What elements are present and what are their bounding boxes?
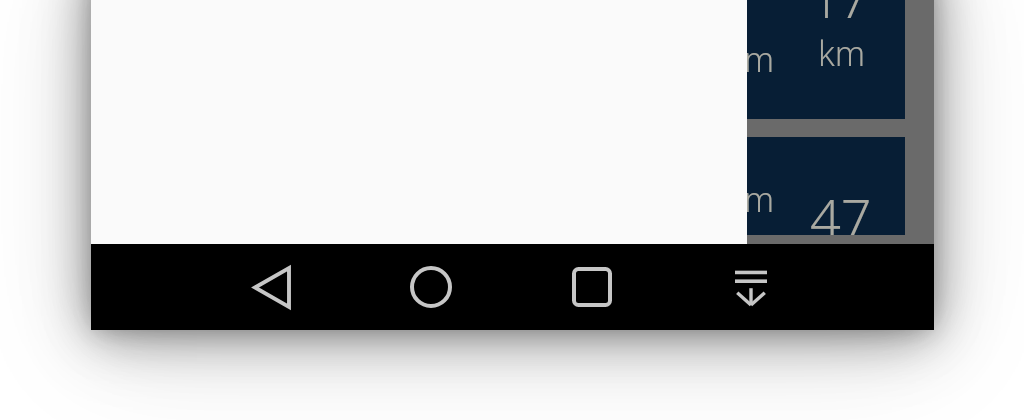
staticText: km [727, 36, 775, 82]
button[interactable]: 17 [109, 0, 905, 119]
button[interactable]: 47 [109, 137, 905, 235]
button[interactable]: Back [220, 244, 324, 330]
staticText: 17 [811, 0, 869, 33]
button[interactable]: Hide keyboard [699, 244, 803, 330]
staticText: 47 [810, 180, 872, 235]
staticText: km [727, 176, 775, 222]
staticText: km [818, 30, 866, 76]
button[interactable]: Recent apps [540, 244, 644, 330]
button[interactable]: Home [379, 244, 483, 330]
